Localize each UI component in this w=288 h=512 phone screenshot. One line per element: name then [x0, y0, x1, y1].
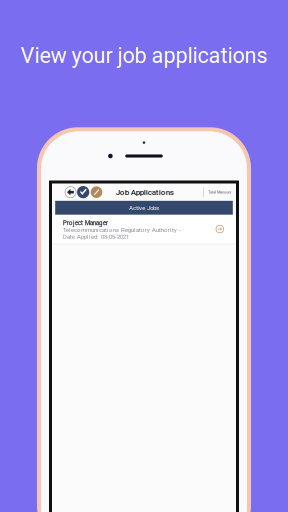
staticText: Talal Mansoor [208, 190, 231, 194]
button[interactable]: Project Manager [52, 215, 236, 244]
staticText: View your job applications [20, 43, 267, 68]
staticText: Active Jobs [129, 204, 159, 211]
button[interactable]: Edit [89, 186, 102, 198]
button[interactable]: Approved applications [76, 186, 89, 198]
button[interactable]: Back [65, 187, 76, 198]
staticText: Telecommunications Regulatory Authority … [63, 226, 181, 233]
staticText: Date Applied: 03-05-2021 [63, 233, 129, 240]
staticText: Project Manager [63, 219, 108, 227]
staticText: Job Applications [116, 187, 174, 197]
button[interactable]: Talal Mansoor [204, 190, 236, 194]
